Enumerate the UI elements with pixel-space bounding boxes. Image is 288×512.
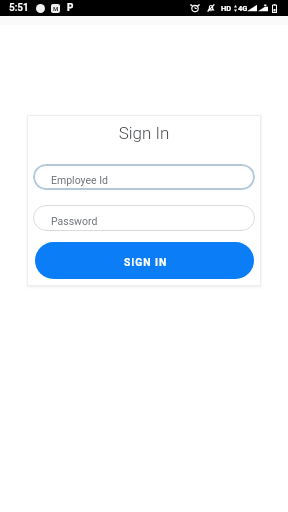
button[interactable]: SIGN IN — [35, 242, 254, 279]
staticText: 5:51 — [9, 2, 29, 14]
button[interactable]: Password — [33, 205, 255, 231]
staticText: SIGN IN — [124, 256, 168, 268]
staticText: Employee Id — [51, 174, 108, 186]
staticText: Sign In — [27, 123, 261, 143]
staticText: P — [67, 2, 74, 14]
staticText: M — [53, 5, 59, 12]
staticText: Password — [51, 215, 98, 227]
staticText: HD — [221, 4, 232, 13]
staticText: 4G — [238, 4, 248, 13]
button[interactable]: Employee Id — [33, 164, 255, 190]
